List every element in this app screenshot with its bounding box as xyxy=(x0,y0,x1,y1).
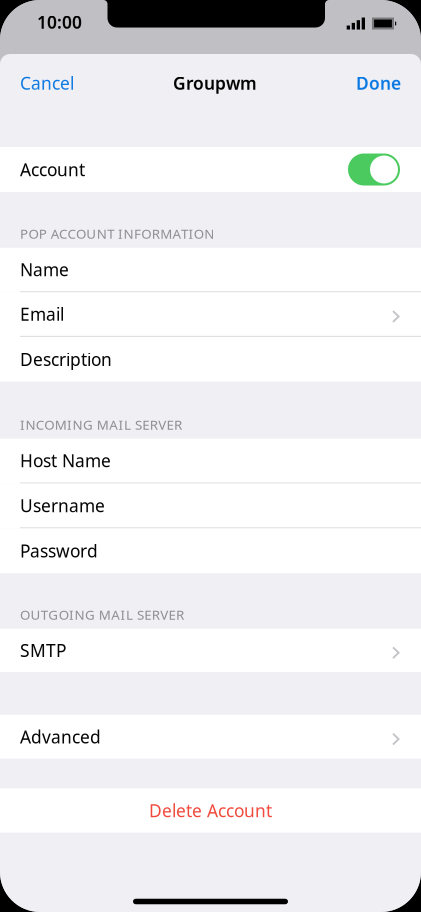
staticText: Advanced xyxy=(20,725,101,748)
staticText: OUTGOING MAIL SERVER xyxy=(20,606,184,623)
staticText: 10:00 xyxy=(37,10,82,33)
button[interactable]: SMTP xyxy=(0,629,421,672)
button[interactable]: Description xyxy=(0,337,421,382)
staticText: Delete Account xyxy=(149,799,272,822)
staticText: Groupwm xyxy=(173,71,257,94)
staticText: SMTP xyxy=(20,639,66,662)
staticText: Done xyxy=(356,71,401,94)
staticText: Cancel xyxy=(20,71,74,94)
button[interactable]: Done xyxy=(344,61,421,105)
button[interactable]: Email xyxy=(0,292,421,337)
button[interactable]: Advanced xyxy=(0,715,421,759)
button[interactable]: Account xyxy=(0,147,421,192)
staticText: Description xyxy=(20,348,112,371)
button[interactable]: Cancel xyxy=(0,61,86,105)
button[interactable]: Password xyxy=(0,528,421,573)
staticText: Username xyxy=(20,494,105,517)
staticText: POP ACCOUNT INFORMATION xyxy=(20,225,214,242)
staticText: Name xyxy=(20,258,69,281)
staticText: Email xyxy=(20,303,64,326)
button[interactable]: Host Name xyxy=(0,439,421,483)
staticText: INCOMING MAIL SERVER xyxy=(20,416,182,433)
button[interactable]: Delete Account xyxy=(0,788,421,833)
staticText: Password xyxy=(20,539,98,562)
button[interactable]: Name xyxy=(0,248,421,292)
staticText: Account xyxy=(20,158,85,181)
button[interactable]: Username xyxy=(0,483,421,528)
staticText: Host Name xyxy=(20,449,111,472)
